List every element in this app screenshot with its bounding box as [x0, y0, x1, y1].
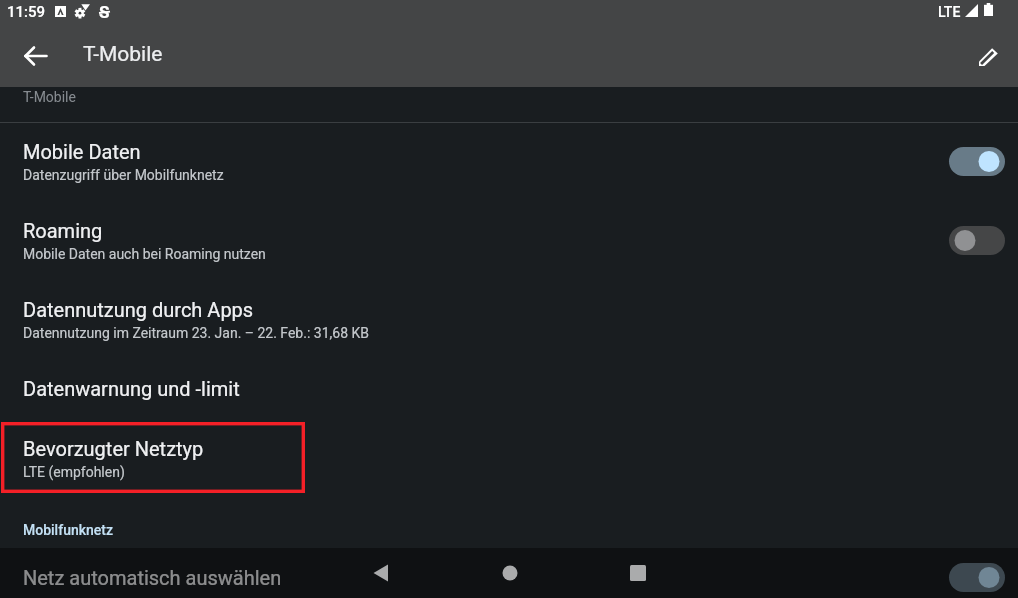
- staticText: Mobilfunknetz: [23, 522, 114, 538]
- staticText: 11:59: [7, 3, 46, 21]
- button[interactable]: Mobile Daten: [0, 122, 1018, 200]
- button[interactable]: Bevorzugter Netztyp: [0, 419, 1018, 497]
- staticText: T-Mobile: [23, 89, 76, 105]
- button[interactable]: Roaming: [0, 198, 1018, 282]
- button[interactable]: Datenwarnung und -limit: [0, 358, 1018, 418]
- staticText: LTE (empfohlen): [23, 464, 125, 480]
- staticText: Mobile Daten: [23, 140, 141, 163]
- staticText: T-Mobile: [83, 42, 163, 67]
- staticText: Datennutzung durch Apps: [23, 298, 254, 321]
- staticText: Netz automatisch auswählen: [23, 566, 282, 589]
- button[interactable]: Home: [486, 549, 534, 597]
- button[interactable]: Datennutzung durch Apps: [0, 280, 1018, 358]
- staticText: LTE: [938, 4, 961, 20]
- button[interactable]: Navigate up: [18, 38, 54, 74]
- staticText: S: [99, 2, 110, 22]
- staticText: Roaming: [23, 219, 103, 242]
- staticText: Datenzugriff über Mobilfunknetz: [23, 167, 224, 183]
- button[interactable]: Netz automatisch auswählen: [0, 547, 1018, 598]
- staticText: Mobile Daten auch bei Roaming nutzen: [23, 246, 266, 262]
- staticText: Bevorzugter Netztyp: [23, 437, 204, 460]
- button[interactable]: Recent apps: [614, 549, 662, 597]
- staticText: Datennutzung im Zeitraum 23. Jan. – 22. …: [23, 325, 369, 341]
- button[interactable]: Back: [357, 549, 405, 597]
- button[interactable]: Edit: [970, 38, 1006, 74]
- staticText: Datenwarnung und -limit: [23, 377, 240, 400]
